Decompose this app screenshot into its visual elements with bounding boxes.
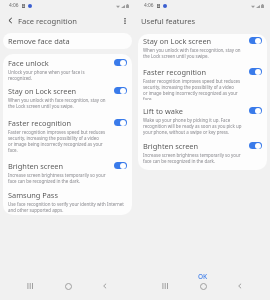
staticText: Stay on Lock screen [8,86,77,96]
button[interactable]: Faster recognition [3,113,132,156]
staticText: Faster recognition [143,67,207,77]
staticText: Faster recognition improves speed but re… [143,78,241,84]
staticText: Remove face data [8,36,70,46]
button[interactable]: Toggle on [249,37,262,44]
staticText: Lift to wake [143,106,184,116]
button[interactable]: Lift to wake [138,100,267,135]
button[interactable]: Navigate up [4,14,17,27]
staticText: Use face recognition to verify your iden… [8,201,124,207]
button[interactable]: Brighten screen [138,135,267,170]
staticText: When you unlock with face recognition, s… [143,47,241,53]
button[interactable]: Toggle on [114,119,127,126]
button[interactable]: Back [232,278,248,294]
staticText: Faster recognition improves speed but re… [8,129,106,135]
staticText: recognition will be ready as soon as you… [143,123,242,129]
button[interactable]: More options [118,14,131,27]
staticText: Samsung Pass [8,190,58,200]
staticText: face can be recognized in the dark. [8,178,80,184]
staticText: face can be recognized in the dark. [143,158,215,164]
staticText: face. [143,96,153,100]
staticText: your phone, without a swipe or key press… [143,129,230,135]
button[interactable]: Toggle on [114,87,127,94]
staticText: Face recognition [18,16,77,26]
button[interactable]: Home [195,278,211,294]
staticText: the Lock screen until you swipe. [143,53,209,59]
button[interactable]: Faster recognition [138,61,267,100]
staticText: security, increasing the possibility of … [143,84,234,90]
button[interactable]: Back [97,278,113,294]
button[interactable]: Samsung Pass [3,185,132,215]
staticText: face. [8,147,18,153]
staticText: and other supported apps. [8,207,64,213]
button[interactable]: Stay on Lock screen [138,34,267,61]
staticText: Useful features [141,16,196,26]
staticText: security, increasing the possibility of … [8,135,99,141]
staticText: or image being incorrectly recognized as… [143,90,238,96]
button[interactable]: Toggle on [249,107,262,114]
staticText: Increase screen brightness temporarily s… [143,152,241,158]
staticText: Brighten screen [143,141,199,151]
button[interactable]: Toggle on [114,162,127,169]
staticText: the Lock screen until you swipe. [8,103,74,109]
staticText: Wake up your phone by picking it up. Fac… [143,117,231,123]
button[interactable]: OK [189,270,217,283]
button[interactable]: Recent apps [22,278,38,294]
staticText: Unlock your phone when your face is [8,69,85,75]
staticText: or image being incorrectly recognized as… [8,141,103,147]
staticText: recognized. [8,75,33,81]
staticText: OK [198,272,208,281]
button[interactable]: Brighten screen [3,156,132,185]
staticText: Brighten screen [8,161,64,171]
button[interactable]: Recent apps [157,278,173,294]
button[interactable]: Home [60,278,76,294]
staticText: Increase screen brightness temporarily s… [8,172,106,178]
button[interactable]: Toggle on [249,68,262,75]
staticText: Stay on Lock screen [143,36,212,46]
staticText: 4:06 [144,2,154,9]
staticText: When you unlock with face recognition, s… [8,97,106,103]
button[interactable]: Remove face data [3,33,132,49]
staticText: Faster recognition [8,118,72,128]
staticText: 4:06 [9,2,19,9]
staticText: Face unlock [8,58,49,68]
button[interactable]: Toggle on [249,142,262,149]
button[interactable]: Stay on Lock screen [3,83,132,113]
button[interactable]: Toggle on [114,59,127,66]
button[interactable]: Face unlock [3,54,132,83]
